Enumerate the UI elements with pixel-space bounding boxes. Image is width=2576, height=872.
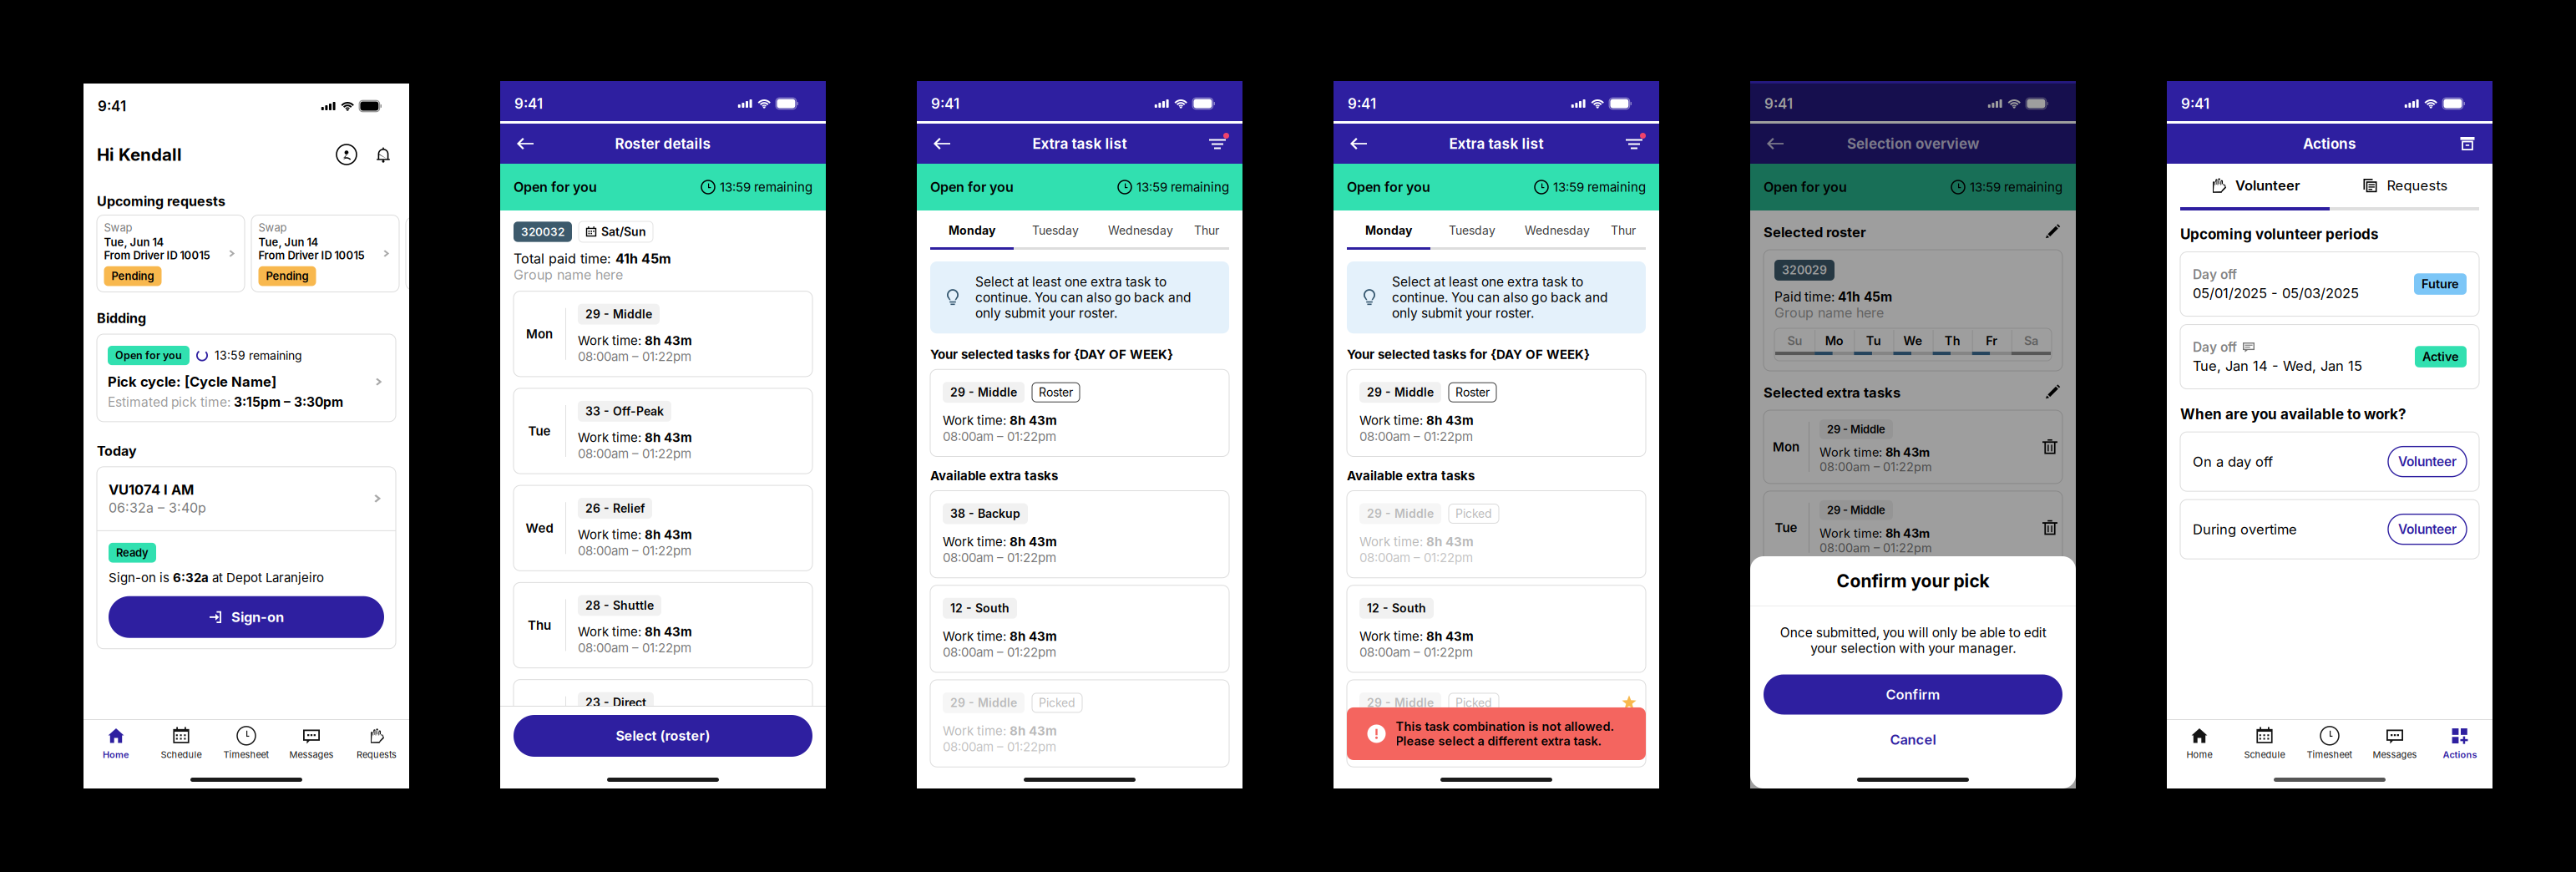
button[interactable]: Messages [2362,719,2427,766]
staticText: Your selected tasks for {DAY OF WEEK} [930,347,1173,362]
button[interactable]: Back [507,125,544,162]
staticText: 29 - Middle [585,307,652,321]
staticText: Work time: [1359,629,1426,644]
staticText: Day off [2193,267,2237,282]
button[interactable]: Notifications [371,142,396,167]
staticText: Confirm [1886,686,1940,703]
staticText: Select (roster) [616,728,710,744]
staticText: This task combination is not allowed. Pl… [1396,719,1614,748]
button[interactable]: Swap [251,215,399,292]
button[interactable]: Home [2167,719,2232,766]
staticText: Work time: [943,413,1010,428]
staticText: Wednesday [1108,223,1173,238]
staticText: Schedule [161,749,202,760]
button[interactable]: Back [1340,125,1377,162]
button[interactable]: Wednesday [1097,214,1184,247]
staticText: 9:41 [1764,95,1793,112]
staticText: Volunteer [2398,454,2457,469]
staticText: Pending [111,270,154,283]
button[interactable]: Tuesday [1014,214,1097,247]
staticText: 29 - Middle [1827,504,1885,517]
staticText: Requests [2387,177,2448,194]
staticText: Open for you [115,349,182,362]
staticText: Confirm your pick [1837,570,1989,592]
staticText: Sat/Sun [601,225,646,239]
button[interactable]: VU1074 I AM [97,467,396,530]
button[interactable]: Volunteer [2388,447,2467,477]
button[interactable]: Timesheet [214,719,279,766]
staticText: Th [1944,334,1960,348]
staticText: 12 - South [950,601,1010,615]
staticText: During overtime [2193,521,2297,538]
staticText: 38 - Backup [950,507,1020,521]
staticText: 08:00am – 01:22pm [943,550,1056,565]
staticText: Selected extra tasks [1764,384,1900,401]
button[interactable]: Actions [2427,719,2492,766]
staticText: Open for you [930,179,1014,195]
button[interactable]: Requests [344,719,409,766]
staticText: Work time: [1359,413,1426,428]
staticText: 12 - South [1367,601,1426,615]
button[interactable]: Back [924,125,960,162]
staticText: 08:00am – 01:22pm [943,645,1056,660]
button[interactable]: Monday [930,214,1014,247]
button[interactable]: Tuesday [1430,214,1514,247]
button[interactable]: Profile [334,142,359,167]
button[interactable]: Open for you [97,334,396,422]
button[interactable]: Remove task [2041,438,2059,456]
staticText: Roster [1039,385,1073,399]
staticText: 08:00am – 01:22pm [1359,429,1473,444]
button[interactable]: Messages [279,719,344,766]
button[interactable]: Schedule [149,719,214,766]
staticText: Hi Kendall [97,144,182,165]
staticText: Once submitted, you will only be able to… [1780,625,2046,656]
staticText: 41h 45m [615,250,671,267]
staticText: Work time: [1819,526,1885,540]
staticText: 8h 43m [645,430,692,445]
staticText: Volunteer [2398,521,2457,537]
button[interactable]: Back [1757,125,1794,162]
staticText: Tuesday [1032,223,1079,238]
button[interactable]: Filter [1616,125,1652,162]
button[interactable]: Wednesday [1514,214,1601,247]
button[interactable]: Volunteer [2180,164,2330,207]
staticText: 13:59 remaining [215,348,302,362]
button[interactable]: Remove task [2041,519,2059,537]
button[interactable]: Schedule [2232,719,2297,766]
staticText: 8h 43m [1426,413,1474,428]
staticText: 9:41 [98,97,126,115]
staticText: Tuesday [1449,223,1495,238]
button[interactable]: Requests [2330,164,2479,207]
staticText: Picked [1455,507,1492,521]
button[interactable]: Filter [1199,125,1236,162]
button[interactable]: Thur [1601,214,1646,247]
staticText: 29 - Middle [1367,385,1434,399]
button[interactable]: Archive [2449,125,2486,162]
button[interactable]: Select (roster) [514,715,812,757]
staticText: Estimated pick time: [108,394,234,410]
button[interactable]: Thur [1184,214,1229,247]
button[interactable]: Monday [1347,214,1430,247]
staticText: Thur [1194,223,1219,238]
staticText: 06:32a – 3:40p [109,500,206,516]
staticText: Group name here [1774,305,1884,321]
staticText: Mon [526,326,553,341]
button[interactable]: Swap [97,215,245,292]
staticText: VU1074 I AM [109,481,194,498]
staticText: Monday [1365,223,1412,238]
button[interactable]: Edit extra tasks [2042,383,2062,403]
staticText: Day off [2193,339,2237,355]
button[interactable]: Volunteer [2388,514,2467,544]
staticText: Mon [1773,439,1799,454]
button[interactable]: Timesheet [2297,719,2362,766]
button[interactable]: Home [84,719,149,766]
staticText: 13:59 remaining [1553,179,1646,195]
button[interactable]: Edit selected roster [2042,222,2062,242]
staticText: 08:00am – 01:22pm [578,446,691,461]
button[interactable]: Confirm [1764,674,2062,715]
staticText: 8h 43m [645,624,692,639]
button[interactable]: Sign-on [109,596,384,638]
button[interactable]: Cancel [1764,726,2062,753]
staticText: Future [2422,277,2459,291]
staticText: Available extra tasks [1347,468,1475,483]
